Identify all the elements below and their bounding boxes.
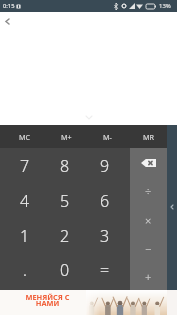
button[interactable]: ÷ <box>130 177 167 206</box>
button[interactable]: 1 <box>5 218 45 253</box>
button[interactable]: = <box>85 252 125 287</box>
button[interactable]: + <box>130 262 167 290</box>
staticText: − <box>145 241 152 256</box>
staticText: 0 <box>60 259 70 281</box>
button[interactable]: Backspace <box>130 148 167 177</box>
button[interactable]: Back <box>0 14 14 28</box>
button[interactable]: Open side panel <box>167 125 177 290</box>
button[interactable]: 8 <box>45 148 85 183</box>
button[interactable]: × <box>130 206 167 234</box>
staticText: = <box>100 259 110 281</box>
button[interactable]: . <box>5 252 45 287</box>
button[interactable]: 6 <box>85 183 125 218</box>
button[interactable]: 9 <box>85 148 125 183</box>
staticText: 0:15 <box>3 2 15 10</box>
button[interactable]: 5 <box>45 183 85 218</box>
staticText: MC <box>19 132 31 142</box>
button[interactable]: M- <box>87 125 128 148</box>
button[interactable]: 0 <box>45 252 85 287</box>
staticText: 8 <box>60 155 70 177</box>
staticText: 5 <box>60 190 70 212</box>
staticText: 6 <box>100 190 110 212</box>
staticText: × <box>145 213 152 228</box>
staticText: MR <box>143 132 154 142</box>
staticText: 3 <box>100 225 110 247</box>
staticText: 2 <box>60 225 70 247</box>
staticText: 1 <box>20 225 30 247</box>
staticText: 9 <box>100 155 110 177</box>
staticText: M- <box>103 132 112 142</box>
button[interactable]: МЕНЯЙСЯ С НАМИ <box>0 290 177 315</box>
button[interactable]: 4 <box>5 183 45 218</box>
button[interactable]: 2 <box>45 218 85 253</box>
staticText: 7 <box>20 155 30 177</box>
staticText: 13% <box>159 2 171 10</box>
staticText: 4 <box>20 190 30 212</box>
button[interactable]: MC <box>4 125 46 148</box>
staticText: + <box>145 269 152 284</box>
staticText: . <box>23 259 27 281</box>
staticText: МЕНЯЙСЯ С НАМИ <box>25 292 70 309</box>
button[interactable]: M+ <box>46 125 87 148</box>
staticText: M+ <box>61 132 72 142</box>
button[interactable]: − <box>130 234 167 262</box>
button[interactable]: MR <box>128 125 169 148</box>
button[interactable]: 7 <box>5 148 45 183</box>
staticText: ÷ <box>145 184 152 199</box>
button[interactable]: 3 <box>85 218 125 253</box>
